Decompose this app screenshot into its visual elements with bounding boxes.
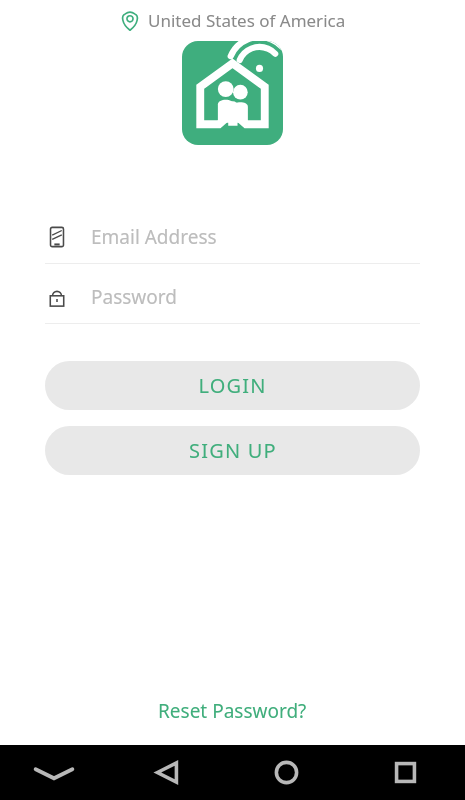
button[interactable]: Back bbox=[108, 745, 227, 800]
button[interactable]: United States of America bbox=[0, 9, 465, 32]
staticText: Email Address bbox=[91, 224, 217, 250]
staticText: United States of America bbox=[148, 9, 346, 32]
button[interactable]: Hide keyboard bbox=[0, 745, 108, 800]
button[interactable]: Home bbox=[227, 745, 346, 800]
staticText: Password bbox=[91, 284, 177, 310]
staticText: Reset Password? bbox=[158, 698, 307, 724]
other: App logo bbox=[182, 41, 283, 145]
button[interactable]: SIGN UP bbox=[45, 426, 420, 475]
button[interactable]: Reset Password? bbox=[148, 694, 317, 728]
button[interactable]: Password bbox=[0, 278, 465, 316]
button[interactable]: LOGIN bbox=[45, 361, 420, 410]
staticText: SIGN UP bbox=[189, 437, 277, 464]
staticText: LOGIN bbox=[198, 372, 267, 399]
button[interactable]: Email Address bbox=[0, 218, 465, 256]
button[interactable]: Recent apps bbox=[346, 745, 465, 800]
